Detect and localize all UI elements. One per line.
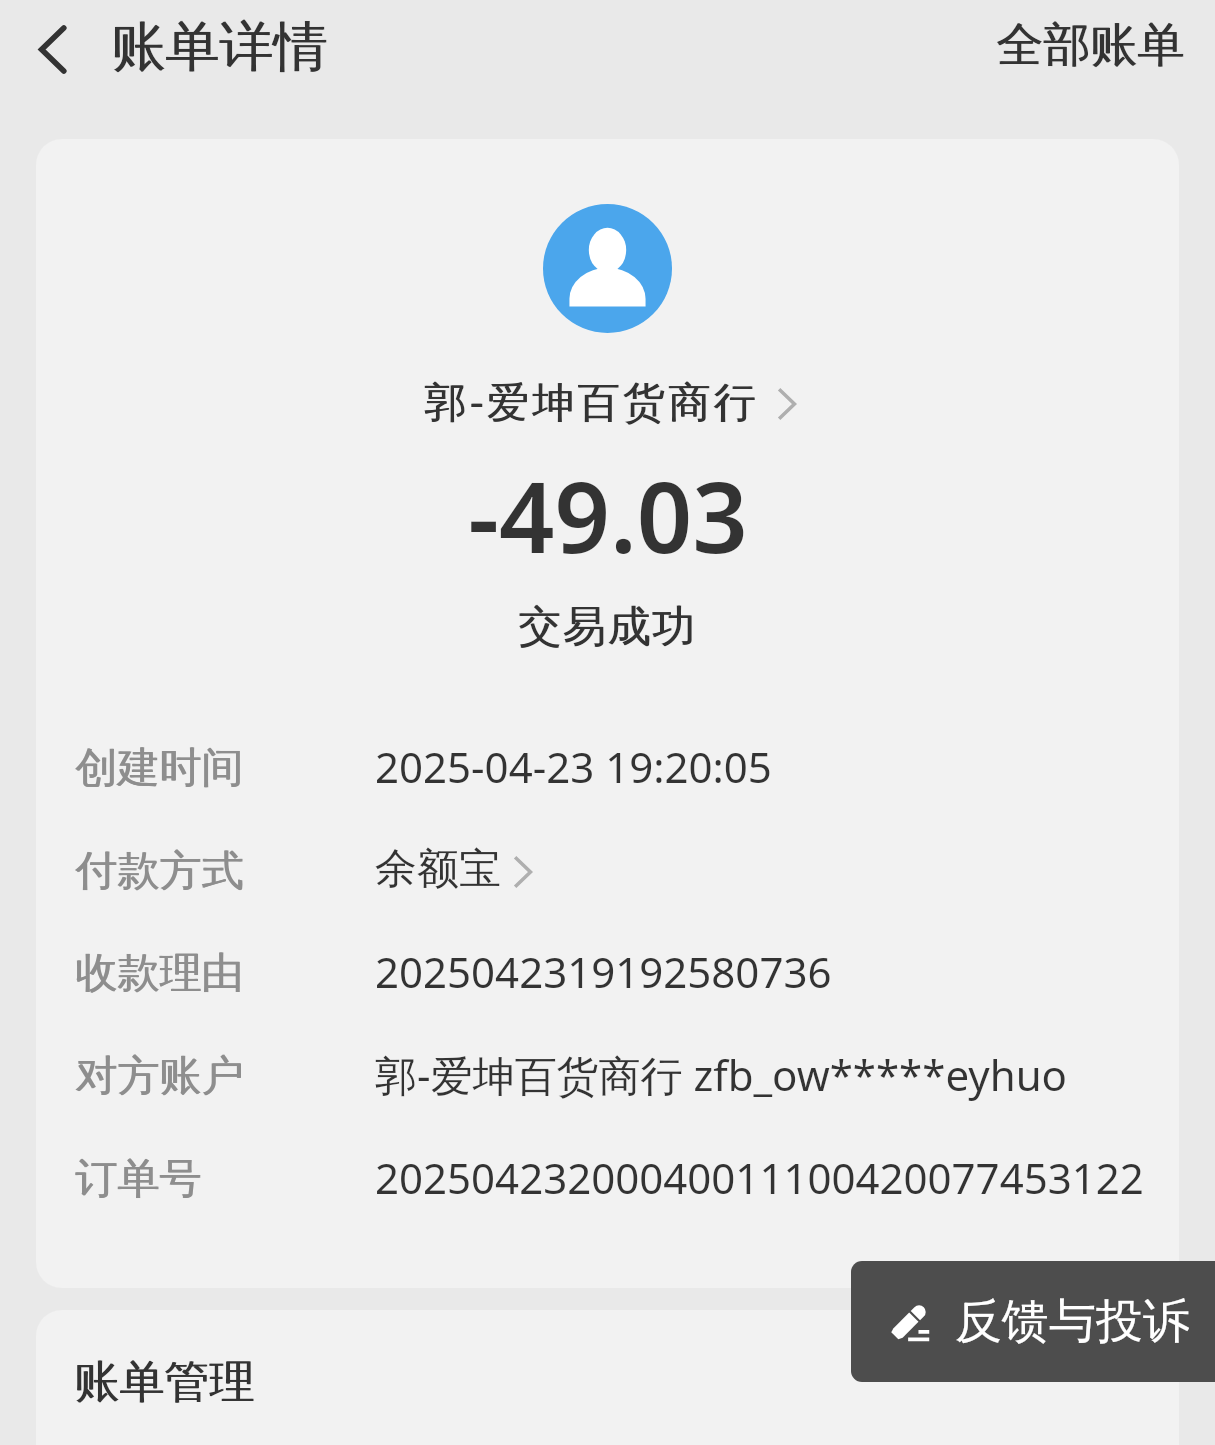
button[interactable]: 创建时间 (36, 723, 1179, 809)
staticText: 郭-爱坤百货商行 (424, 372, 759, 429)
button[interactable]: Back (10, 8, 94, 92)
button[interactable]: 对方账户 (36, 1031, 1179, 1117)
button[interactable]: 收款理由 (36, 928, 1179, 1014)
button[interactable]: 郭-爱坤百货商行 (424, 372, 798, 429)
button[interactable]: 订单号 (36, 1134, 1179, 1220)
staticText: 全部账单 (996, 16, 1184, 75)
staticText: -49.03 (468, 449, 748, 581)
staticText: 20250423200040011100420077453122 (375, 1149, 1144, 1206)
staticText: 2025-04-23 19:20:05 (375, 738, 772, 795)
button[interactable]: 全部账单 (966, 0, 1214, 90)
button[interactable]: 反馈与投诉 (851, 1261, 1215, 1382)
staticText: 创建时间 (75, 742, 243, 795)
staticText: 账单管理 (74, 1354, 254, 1411)
staticText: 收款理由 (75, 947, 243, 1000)
staticText: 对方账户 (75, 1050, 243, 1103)
staticText: 交易成功 (518, 600, 697, 654)
staticText: 余额宝 (375, 843, 501, 896)
staticText: 订单号 (75, 1153, 201, 1206)
button[interactable]: Merchant avatar (543, 204, 672, 333)
button[interactable]: 付款方式 (36, 826, 1179, 912)
staticText: 郭-爱坤百货商行 zfb_ow*****eyhuo (375, 1046, 1067, 1103)
staticText: 付款方式 (75, 845, 243, 898)
staticText: 反馈与投诉 (955, 1292, 1190, 1351)
staticText: 账单详情 (111, 13, 327, 81)
staticText: 2025042319192580736 (375, 943, 832, 1000)
